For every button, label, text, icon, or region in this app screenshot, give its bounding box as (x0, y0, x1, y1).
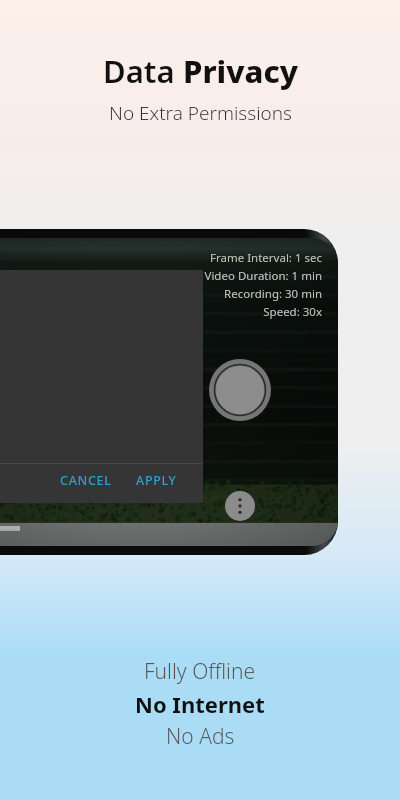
button[interactable]: More options (225, 491, 255, 521)
staticText: Data (103, 50, 183, 92)
staticText: Fully Offline (144, 657, 256, 686)
button[interactable]: Shutter (209, 359, 271, 421)
staticText: Video Duration: 1 min (204, 268, 322, 284)
staticText: Privacy (183, 50, 298, 92)
button[interactable]: CANCEL (50, 464, 122, 497)
staticText: No Extra Permissions (109, 100, 292, 126)
staticText: No Internet (135, 689, 265, 719)
staticText: APPLY (136, 472, 177, 489)
button[interactable]: APPLY (126, 464, 187, 497)
staticText: Recording: 30 min (224, 286, 322, 302)
staticText: Speed: 30x (263, 304, 322, 320)
staticText: No Ads (166, 722, 235, 751)
staticText: Frame Interval: 1 sec (210, 250, 322, 266)
staticText: CANCEL (60, 472, 112, 489)
